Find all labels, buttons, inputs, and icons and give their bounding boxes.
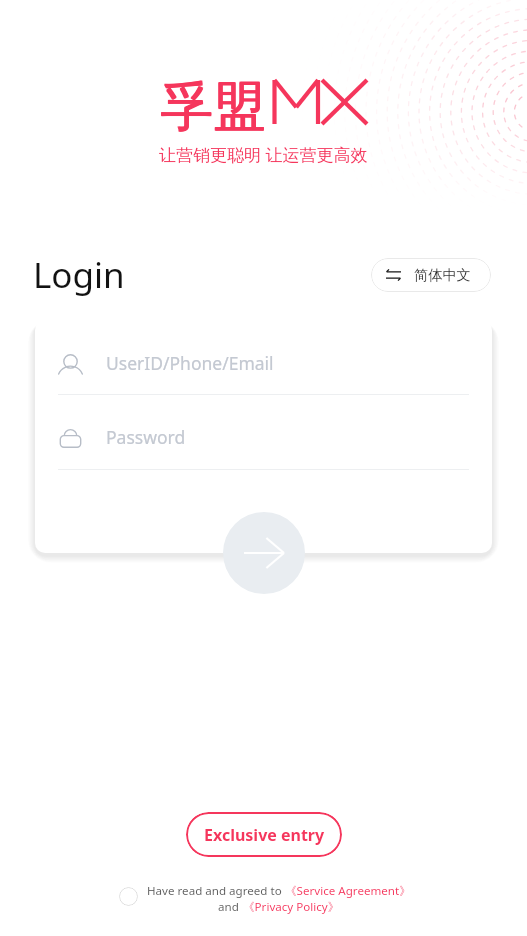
staticText: 孚盟 — [161, 73, 266, 139]
staticText: and — [218, 899, 239, 915]
staticText: Password — [106, 425, 186, 449]
staticText: 简体中文 — [414, 266, 471, 284]
staticText: 孚盟 — [160, 74, 265, 140]
button[interactable]: Agree to terms — [119, 887, 138, 906]
staticText: 孚盟 — [160, 73, 265, 139]
button[interactable]: Sign in — [223, 512, 305, 594]
staticText: 《Service Agreement》 — [285, 883, 411, 899]
button[interactable]: Exclusive entry — [186, 812, 342, 857]
staticText: Have read and agreed to — [147, 883, 285, 899]
button[interactable]: 简体中文 — [371, 258, 491, 292]
staticText: Exclusive entry — [204, 824, 325, 846]
staticText: 《Privacy Policy》 — [243, 899, 340, 915]
staticText: 孚盟 — [161, 74, 266, 140]
staticText: UserID/Phone/Email — [106, 351, 274, 375]
staticText: Login — [33, 251, 125, 299]
staticText: 让营销更聪明 让运营更高效 — [159, 143, 368, 166]
